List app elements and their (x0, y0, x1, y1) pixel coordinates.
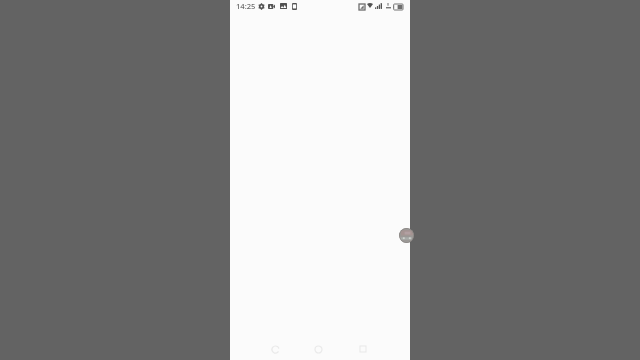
button[interactable]: Home (311, 342, 325, 356)
button[interactable]: Recent apps (356, 342, 370, 356)
button[interactable]: Floating overlay bubble (399, 228, 414, 243)
staticText: 14:25 (236, 1, 256, 11)
button[interactable]: Back (268, 342, 282, 356)
